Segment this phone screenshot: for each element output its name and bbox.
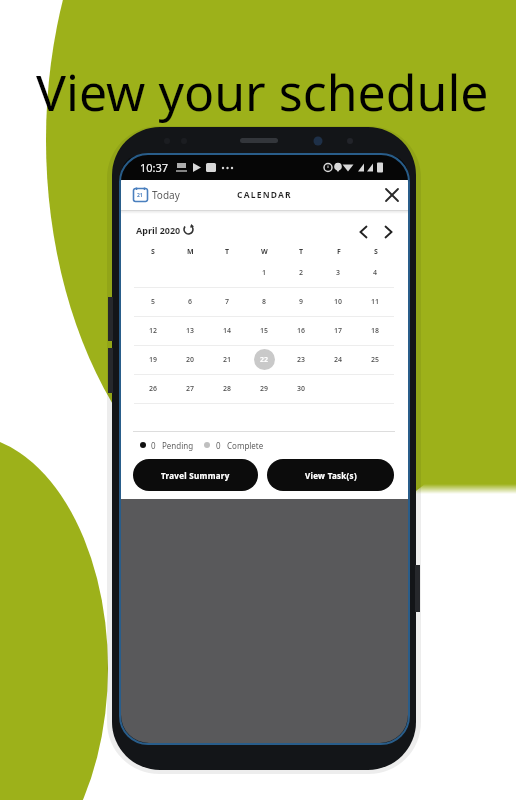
- staticText: T: [225, 247, 230, 257]
- button[interactable]: 4: [357, 258, 394, 287]
- button[interactable]: 27: [172, 374, 209, 403]
- staticText: Complete: [227, 440, 264, 451]
- staticText: 4: [373, 268, 378, 278]
- button[interactable]: 13: [172, 316, 209, 345]
- staticText: Pending: [162, 440, 194, 451]
- staticText: 7: [225, 297, 230, 307]
- staticText: 2: [299, 268, 304, 278]
- button[interactable]: Travel Summary: [133, 459, 258, 491]
- button[interactable]: 18: [357, 316, 394, 345]
- staticText: 8: [262, 297, 267, 307]
- staticText: 26: [149, 384, 158, 394]
- button[interactable]: 29: [246, 374, 283, 403]
- staticText: 29: [260, 384, 269, 394]
- button[interactable]: 21: [133, 187, 148, 202]
- button[interactable]: 15: [246, 316, 283, 345]
- staticText: W: [261, 247, 268, 257]
- button[interactable]: 22: [246, 345, 283, 374]
- button[interactable]: [357, 374, 394, 403]
- button[interactable]: 9: [283, 287, 320, 316]
- staticText: 9: [299, 297, 304, 307]
- button[interactable]: [359, 226, 368, 238]
- staticText: Travel Summary: [161, 470, 230, 481]
- staticText: View Task(s): [305, 470, 357, 481]
- button[interactable]: 19: [134, 345, 172, 374]
- staticText: F: [337, 247, 341, 257]
- staticText: M: [187, 247, 194, 257]
- button[interactable]: 1: [246, 258, 283, 287]
- button[interactable]: [183, 224, 194, 235]
- button[interactable]: 30: [283, 374, 320, 403]
- button[interactable]: 21: [209, 345, 246, 374]
- staticText: 19: [149, 355, 158, 365]
- staticText: View your schedule: [36, 58, 489, 126]
- staticText: 30: [297, 384, 306, 394]
- staticText: 22: [260, 355, 269, 365]
- staticText: 11: [371, 297, 380, 307]
- staticText: 21: [137, 192, 143, 199]
- button[interactable]: 11: [357, 287, 394, 316]
- staticText: 28: [223, 384, 232, 394]
- button[interactable]: 8: [246, 287, 283, 316]
- button[interactable]: 3: [320, 258, 357, 287]
- staticText: 10:37: [140, 160, 169, 175]
- button[interactable]: 28: [209, 374, 246, 403]
- staticText: S: [151, 247, 155, 257]
- button[interactable]: [320, 374, 357, 403]
- button[interactable]: 26: [134, 374, 172, 403]
- button[interactable]: 14: [209, 316, 246, 345]
- staticText: 3: [336, 268, 341, 278]
- button[interactable]: [384, 226, 393, 238]
- staticText: 23: [297, 355, 306, 365]
- staticText: CALENDAR: [237, 189, 292, 201]
- button[interactable]: 24: [320, 345, 357, 374]
- staticText: 27: [186, 384, 195, 394]
- staticText: 13: [186, 326, 195, 336]
- button[interactable]: 6: [172, 287, 209, 316]
- staticText: 6: [188, 297, 193, 307]
- staticText: 17: [334, 326, 343, 336]
- staticText: T: [299, 247, 304, 257]
- staticText: 15: [260, 326, 269, 336]
- staticText: April 2020: [136, 224, 181, 236]
- staticText: S: [374, 247, 378, 257]
- button[interactable]: 5: [134, 287, 172, 316]
- button[interactable]: 23: [283, 345, 320, 374]
- staticText: 14: [223, 326, 232, 336]
- button[interactable]: 12: [134, 316, 172, 345]
- staticText: 5: [151, 297, 156, 307]
- button[interactable]: 7: [209, 287, 246, 316]
- button[interactable]: 16: [283, 316, 320, 345]
- button[interactable]: 2: [283, 258, 320, 287]
- staticText: 18: [371, 326, 380, 336]
- staticText: 24: [334, 355, 343, 365]
- button[interactable]: 25: [357, 345, 394, 374]
- staticText: 1: [262, 268, 267, 278]
- button[interactable]: [386, 189, 398, 201]
- staticText: 0: [151, 440, 156, 451]
- button[interactable]: 10: [320, 287, 357, 316]
- staticText: 21: [223, 355, 232, 365]
- button[interactable]: 20: [172, 345, 209, 374]
- staticText: Today: [152, 188, 180, 202]
- staticText: 25: [371, 355, 380, 365]
- button[interactable]: 17: [320, 316, 357, 345]
- staticText: 0: [216, 440, 221, 451]
- staticText: 16: [297, 326, 306, 336]
- staticText: 12: [149, 326, 158, 336]
- staticText: 20: [186, 355, 195, 365]
- staticText: 10: [334, 297, 343, 307]
- button[interactable]: View Task(s): [267, 459, 394, 491]
